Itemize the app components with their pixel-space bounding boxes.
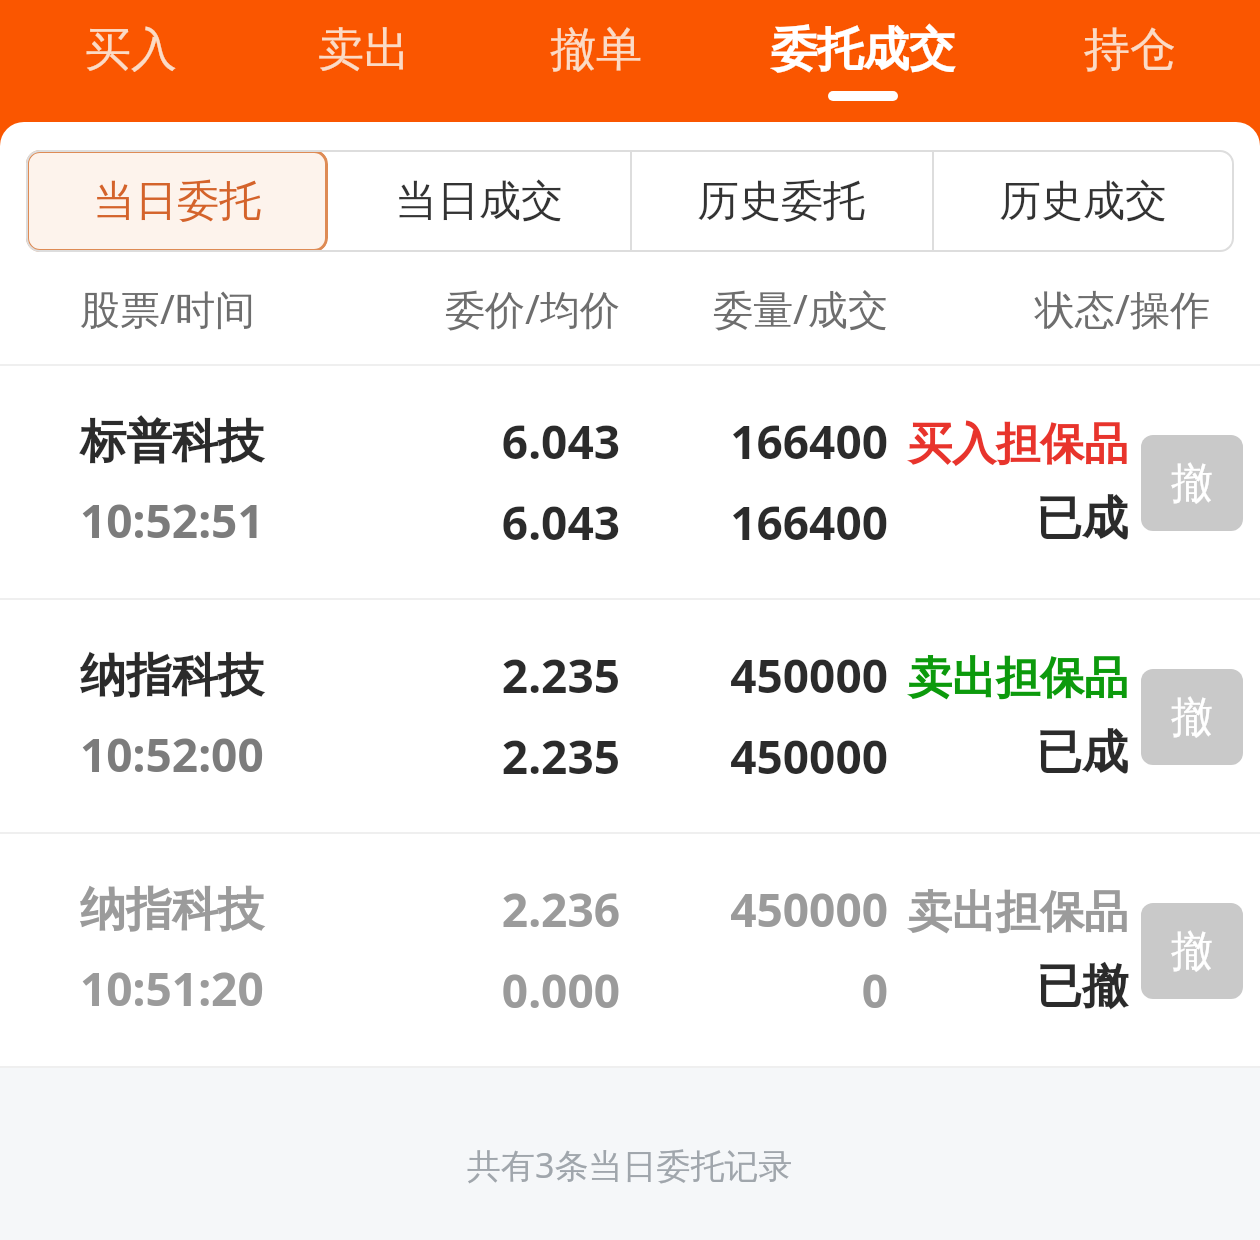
button[interactable]: 撤单 Cancel order [1141,435,1243,531]
staticText: 股票/时间 [80,281,255,336]
button[interactable]: 当日委托 [26,150,328,252]
button[interactable]: 撤单 Cancel order [1141,669,1243,765]
staticText: 状态/操作 [1035,281,1210,336]
staticText: 2.235 [501,644,620,707]
staticText: 纳指科技 [80,647,264,705]
staticText: 6.043 [501,410,620,473]
button[interactable]: 卖出 [247,0,480,122]
button[interactable]: 历史委托 [630,150,932,252]
staticText: 已撤 [1036,958,1128,1016]
staticText: 撤 [1171,691,1213,744]
staticText: 标普科技 [80,413,264,471]
staticText: 撤单 [550,21,642,79]
staticText: 持仓 [1084,21,1176,79]
staticText: 当日成交 [395,175,563,228]
staticText: 2.235 [501,725,620,788]
staticText: 卖出担保品 [908,651,1128,706]
button[interactable]: 撤单 Cancel order [1141,903,1243,999]
staticText: 10:51:20 [80,957,264,1020]
button[interactable]: 持仓 [1014,0,1246,122]
button[interactable]: 买入 [14,0,247,122]
staticText: 当日委托 [93,175,261,228]
staticText: 撤 [1171,457,1213,510]
staticText: 450000 [730,644,888,707]
staticText: 10:52:51 [80,489,264,552]
staticText: 买入担保品 [908,417,1128,472]
staticText: 委托成交 [771,21,955,79]
staticText: 历史委托 [697,175,865,228]
staticText: 166400 [730,491,888,554]
staticText: 卖出担保品 [908,885,1128,940]
staticText: 委价/均价 [445,281,620,336]
staticText: 166400 [730,410,888,473]
button[interactable]: 纳指科技 [0,600,1260,832]
button[interactable]: 标普科技 [0,366,1260,598]
staticText: 已成 [1036,490,1128,548]
staticText: 卖出 [318,21,410,79]
button[interactable]: 纳指科技 [0,834,1260,1066]
staticText: 450000 [730,878,888,941]
button[interactable]: 委托成交 [712,0,1014,122]
staticText: 已成 [1036,724,1128,782]
staticText: 纳指科技 [80,881,264,939]
staticText: 历史成交 [999,175,1167,228]
staticText: 10:52:00 [80,723,264,786]
staticText: 撤 [1171,925,1213,978]
staticText: 2.236 [501,878,620,941]
button[interactable]: 历史成交 [932,150,1234,252]
staticText: 6.043 [501,491,620,554]
staticText: 买入 [85,21,177,79]
staticText: 0 [861,959,888,1022]
staticText: 共有3条当日委托记录 [467,1142,793,1188]
staticText: 0.000 [501,959,620,1022]
staticText: 450000 [730,725,888,788]
staticText: 委量/成交 [713,281,888,336]
button[interactable]: 撤单 [480,0,712,122]
button[interactable]: 当日成交 [328,150,630,252]
